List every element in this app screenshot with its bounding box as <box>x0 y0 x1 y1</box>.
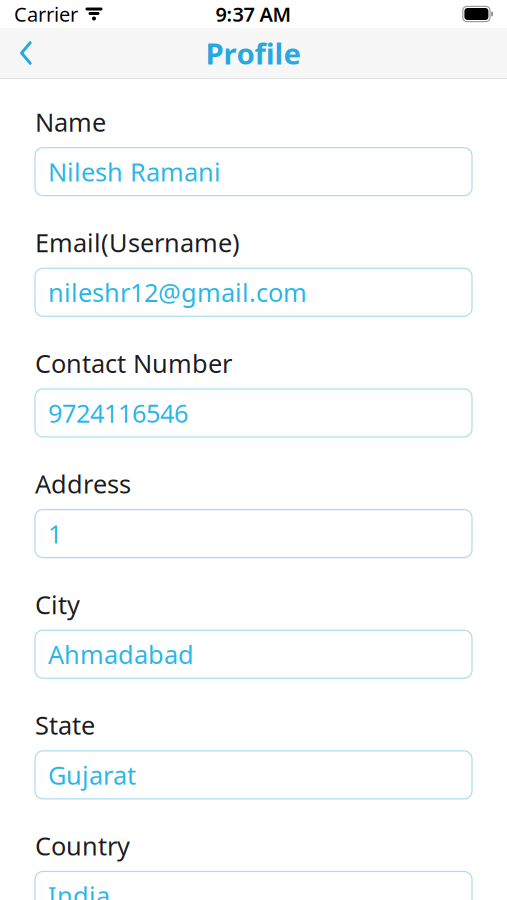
staticText: Email(Username) <box>35 226 240 259</box>
button[interactable]: Ahmadabad <box>35 630 472 678</box>
staticText: Gujarat <box>48 758 136 792</box>
staticText: India <box>48 879 110 900</box>
staticText: Country <box>35 829 130 862</box>
staticText: 9724116546 <box>48 396 188 430</box>
button[interactable]: Nilesh Ramani <box>35 148 472 196</box>
button[interactable]: Back <box>0 29 52 77</box>
staticText: 1 <box>48 517 62 550</box>
staticText: State <box>35 708 95 742</box>
button[interactable]: India <box>35 871 472 900</box>
staticText: Ahmadabad <box>48 637 194 671</box>
staticText: nileshr12@gmail.com <box>48 275 307 309</box>
button[interactable]: 1 <box>35 510 472 558</box>
staticText: Contact Number <box>35 346 232 380</box>
staticText: Name <box>35 105 106 139</box>
staticText: Profile <box>205 33 301 72</box>
button[interactable]: 9724116546 <box>35 389 472 437</box>
staticText: City <box>35 588 80 621</box>
button[interactable]: Gujarat <box>35 751 472 799</box>
staticText: Carrier <box>14 1 78 27</box>
staticText: 9:37 AM <box>215 1 291 27</box>
button[interactable]: nileshr12@gmail.com <box>35 268 472 316</box>
staticText: Address <box>35 467 131 500</box>
staticText: Nilesh Ramani <box>48 155 221 188</box>
